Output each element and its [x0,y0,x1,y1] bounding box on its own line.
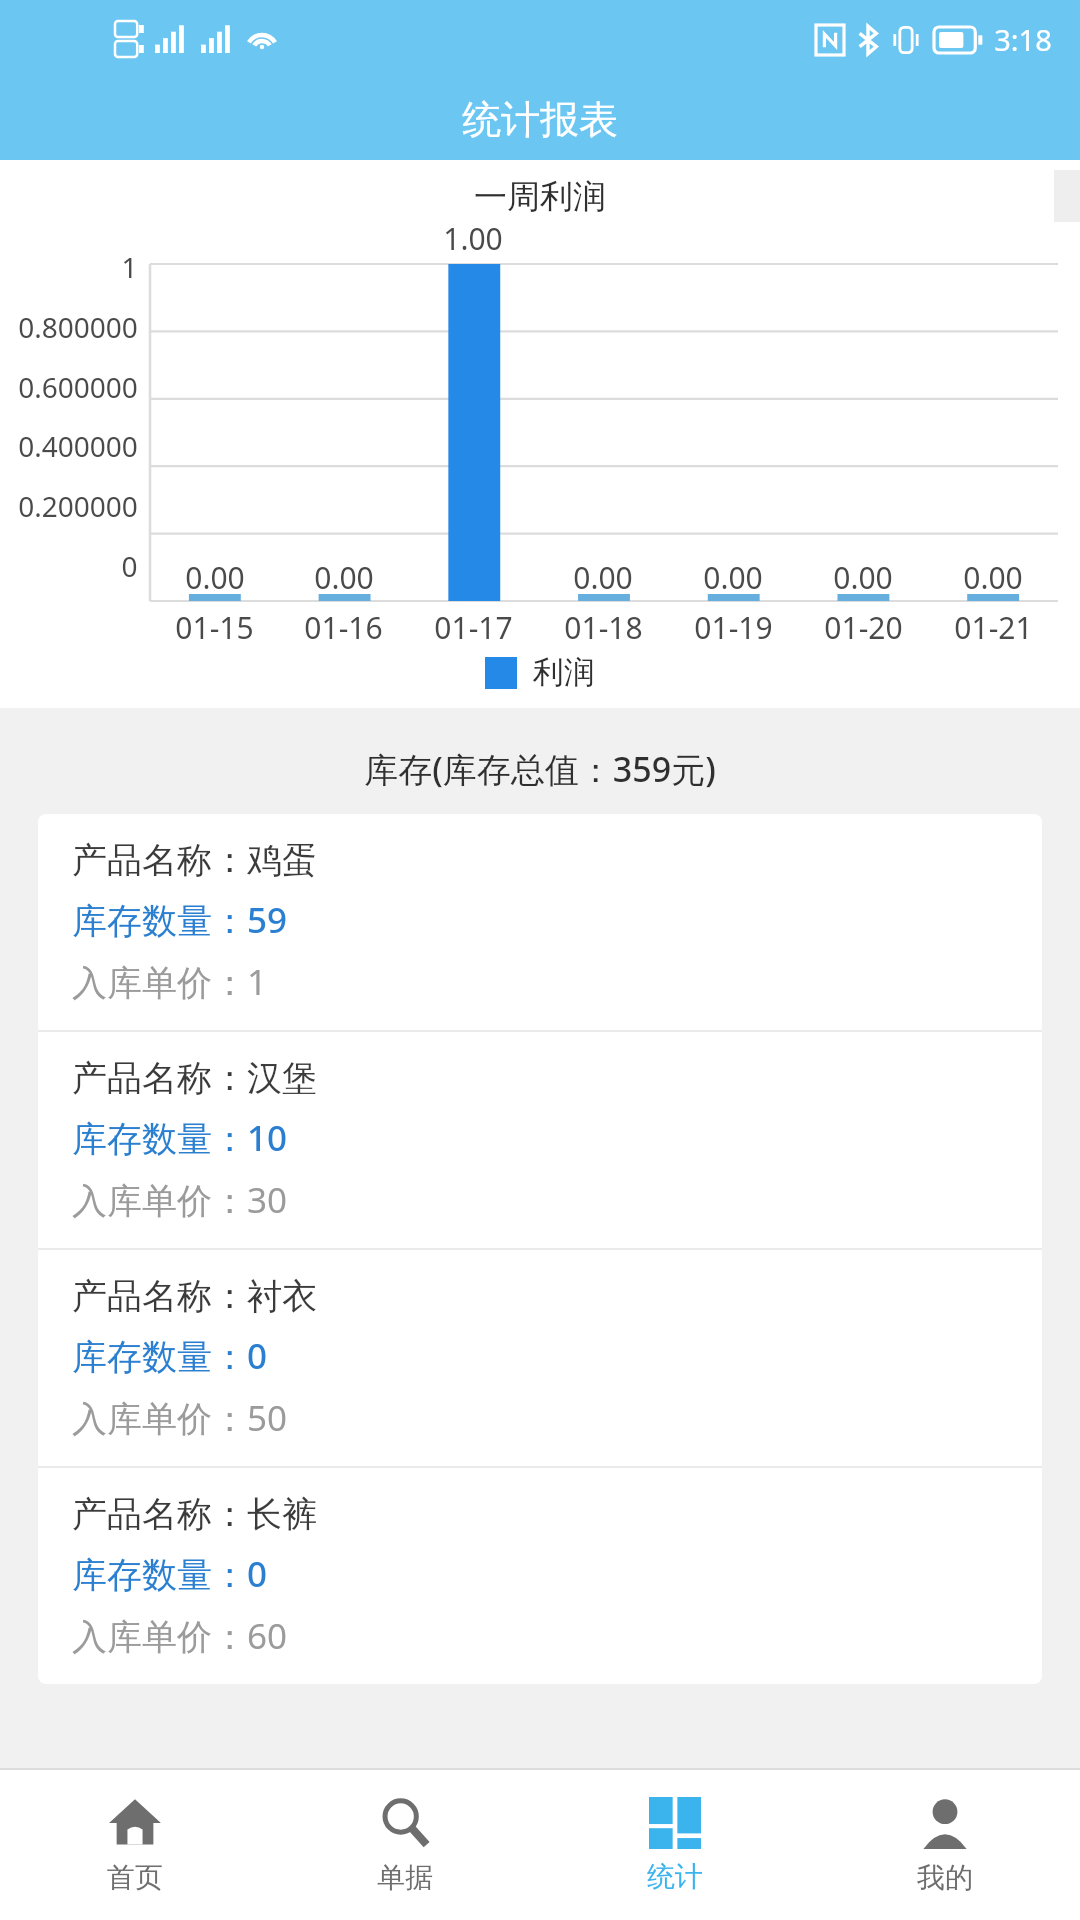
staticText: 库存数量：59 [72,896,288,944]
staticText: 01-18 [564,607,643,648]
staticText: 01-19 [694,607,773,648]
staticText: 入库单价：30 [72,1176,288,1224]
button[interactable]: 首页 [0,1770,270,1920]
staticText: 01-16 [304,607,383,648]
staticText: 1.00 [443,218,503,259]
staticText: 01-20 [824,607,903,648]
staticText: 库存(库存总值：359元) [364,746,716,792]
staticText: 入库单价：60 [72,1612,288,1660]
button[interactable]: 我的 [810,1770,1080,1920]
staticText: 统计 [647,1859,703,1894]
button[interactable]: 产品名称：长裤 [38,1468,1042,1684]
staticText: 单据 [377,1860,433,1895]
staticText: 产品名称：汉堡 [72,1056,317,1100]
button[interactable]: 单据 [270,1770,540,1920]
staticText: 产品名称：衬衣 [72,1274,317,1318]
staticText: 01-21 [954,607,1033,648]
staticText: 库存数量：0 [72,1332,268,1380]
button[interactable]: 产品名称：衬衣 [38,1250,1042,1466]
staticText: 0.200000 [18,487,138,525]
staticText: 01-15 [175,607,254,648]
button[interactable]: 产品名称：鸡蛋 [38,814,1042,1030]
staticText: 库存数量：0 [72,1550,268,1598]
staticText: 0.600000 [18,368,138,406]
staticText: 产品名称：鸡蛋 [72,838,317,882]
staticText: 产品名称：长裤 [72,1492,317,1536]
staticText: 利润 [533,653,595,692]
staticText: 1 [121,248,138,286]
staticText: 入库单价：1 [72,958,268,1006]
staticText: 0.00 [185,557,245,598]
staticText: 入库单价：50 [72,1394,288,1442]
button[interactable]: 统计 [540,1770,810,1920]
staticText: 0.00 [314,557,374,598]
button[interactable]: 产品名称：汉堡 [38,1032,1042,1248]
staticText: 0.00 [703,557,763,598]
staticText: 0.00 [833,557,893,598]
staticText: 统计报表 [462,95,618,144]
staticText: 0.800000 [18,308,138,346]
staticText: 0.00 [573,557,633,598]
staticText: 库存数量：10 [72,1114,288,1162]
staticText: 一周利润 [474,176,606,218]
staticText: 0 [121,547,138,585]
staticText: 我的 [917,1860,973,1895]
staticText: 0.00 [963,557,1023,598]
staticText: 0.400000 [18,427,138,465]
staticText: 首页 [107,1860,163,1895]
staticText: 3:18 [994,20,1052,59]
staticText: 01-17 [434,607,513,648]
